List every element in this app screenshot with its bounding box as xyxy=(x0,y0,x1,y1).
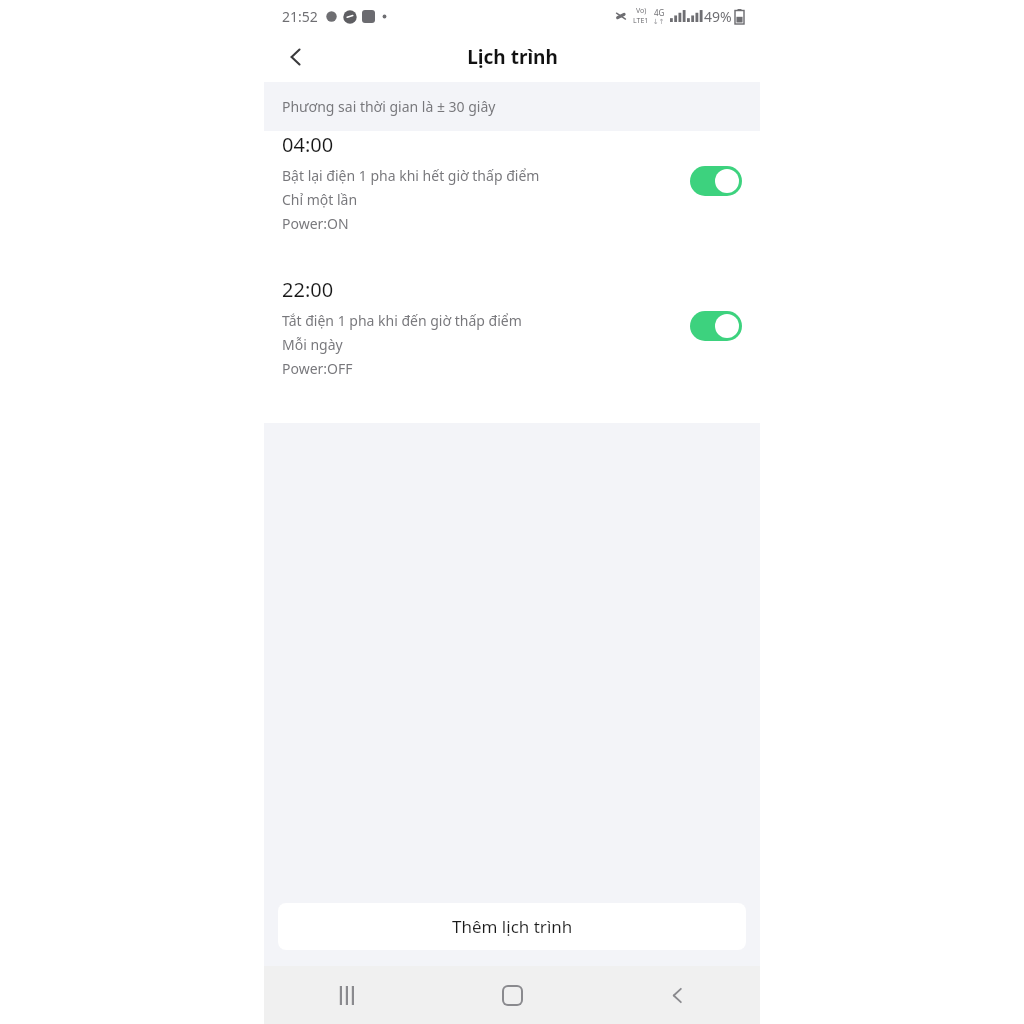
staticText: Bật lại điện 1 pha khi hết giờ thấp điểm xyxy=(282,166,540,185)
button[interactable]: Back xyxy=(595,966,760,1024)
staticText: Chỉ một lần xyxy=(282,190,358,209)
button[interactable]: Home xyxy=(430,966,595,1024)
staticText: 04:00 xyxy=(282,131,334,158)
staticText: Thêm lịch trình xyxy=(452,915,573,938)
button[interactable]: 22:00 xyxy=(264,276,760,376)
staticText: Power:OFF xyxy=(282,359,353,376)
staticText: 49% xyxy=(704,7,732,26)
staticText: 21:52 xyxy=(282,7,318,26)
staticText: ↓↑ xyxy=(653,18,665,26)
staticText: Phương sai thời gian là ± 30 giây xyxy=(282,97,496,116)
staticText: Power:ON xyxy=(282,214,349,231)
staticText: Mỗi ngày xyxy=(282,335,343,354)
staticText: 22:00 xyxy=(282,276,334,303)
button[interactable]: Recent apps xyxy=(264,966,430,1024)
button[interactable]: Toggle schedule xyxy=(690,311,742,341)
staticText: 4G xyxy=(654,7,665,18)
button[interactable]: Thêm lịch trình xyxy=(278,903,746,950)
button[interactable]: Back xyxy=(272,33,320,81)
staticText: Tắt điện 1 pha khi đến giờ thấp điểm xyxy=(282,311,522,330)
button[interactable]: 04:00 xyxy=(264,131,760,231)
staticText: Vo) xyxy=(636,6,647,16)
staticText: Lịch trình xyxy=(467,44,558,70)
button[interactable]: Toggle schedule xyxy=(690,166,742,196)
staticText: LTE1 xyxy=(633,16,649,26)
